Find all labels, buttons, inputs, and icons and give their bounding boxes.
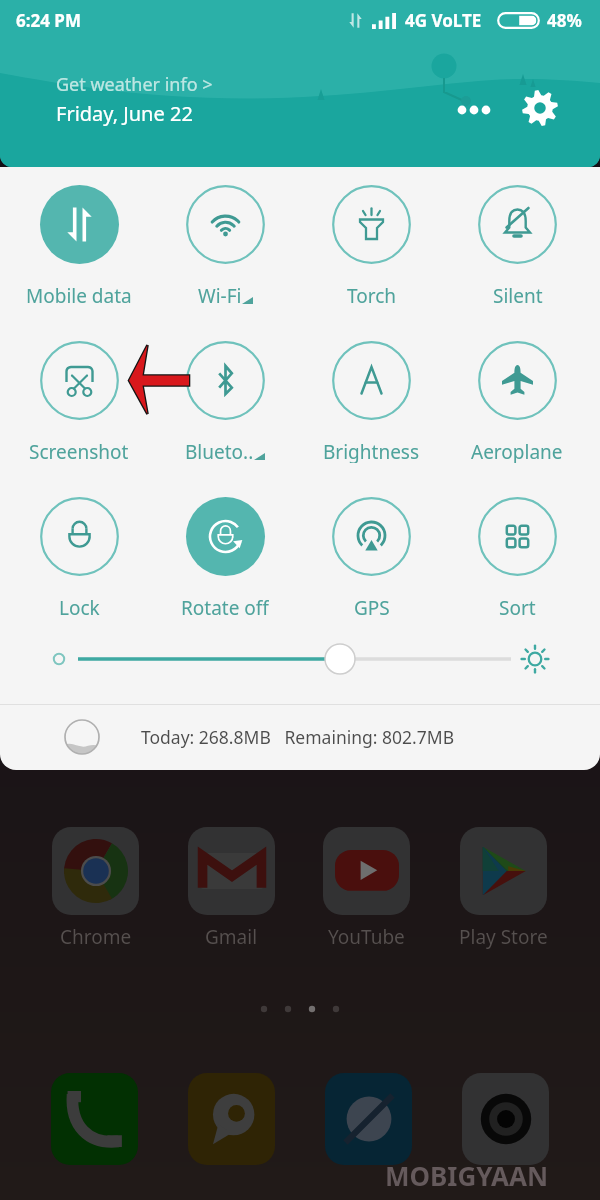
staticText: Blueto.. [185, 439, 254, 463]
button[interactable]: Lock [17, 497, 141, 619]
staticText: GPS [354, 595, 390, 619]
button[interactable]: Settings [516, 84, 564, 132]
button[interactable]: Today: 268.8MB Remaining: 802.7MB [0, 704, 600, 770]
staticText: Today: 268.8MB Remaining: 802.7MB [141, 725, 455, 749]
staticText: 48% [547, 9, 582, 32]
staticText: Mobile data [26, 283, 132, 307]
button[interactable]: App [51, 1073, 138, 1165]
staticText: Brightness [323, 439, 420, 463]
staticText: Screenshot [29, 439, 129, 463]
button[interactable]: Gmail [188, 827, 275, 950]
button[interactable]: App [325, 1073, 412, 1165]
button[interactable]: Rotate off [163, 497, 287, 619]
button[interactable]: Sort [455, 497, 579, 619]
button[interactable]: App [462, 1073, 549, 1165]
button[interactable]: Brightness [309, 341, 433, 463]
button[interactable]: GPS [309, 497, 433, 619]
button[interactable]: Chrome [52, 827, 139, 950]
staticText: MOBIGYAAN [385, 1158, 549, 1193]
staticText: Torch [347, 283, 397, 307]
staticText: Gmail [205, 924, 258, 950]
staticText: Get weather info > [56, 72, 213, 97]
button[interactable]: Torch [309, 185, 433, 307]
button[interactable]: Get weather info > [56, 72, 213, 97]
button[interactable]: Aeroplane [455, 341, 579, 463]
button[interactable]: Silent [455, 185, 579, 307]
staticText: Friday, June 22 [56, 100, 193, 127]
staticText: 6:24 PM [16, 9, 81, 32]
button[interactable]: Wi-Fi [163, 185, 287, 307]
staticText: Chrome [60, 924, 132, 950]
staticText: Sort [499, 595, 536, 619]
staticText: Lock [59, 595, 100, 619]
staticText: Silent [493, 283, 543, 307]
button[interactable]: YouTube [323, 827, 410, 950]
staticText: Wi-Fi [198, 283, 242, 307]
button[interactable]: Screenshot [17, 341, 141, 463]
staticText: YouTube [328, 924, 405, 950]
staticText: Play Store [459, 924, 548, 950]
button[interactable]: Play Store [459, 827, 548, 950]
staticText: Rotate off [181, 595, 269, 619]
button[interactable]: Mobile data [17, 185, 141, 307]
staticText: 4G VoLTE [405, 9, 482, 32]
staticText: Aeroplane [471, 439, 563, 463]
button[interactable]: App [188, 1073, 275, 1165]
button[interactable]: More options [452, 88, 496, 132]
button[interactable]: Blueto.. [163, 341, 287, 463]
